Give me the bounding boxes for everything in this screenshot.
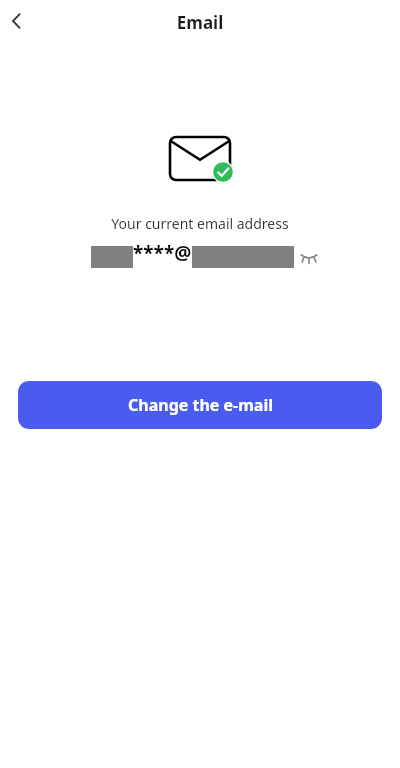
- staticText: Email: [0, 11, 400, 34]
- button[interactable]: Show email address: [296, 244, 322, 270]
- staticText: Your current email address: [0, 214, 400, 233]
- button[interactable]: Back: [0, 4, 34, 38]
- staticText: Change the e-mail: [128, 394, 273, 416]
- button[interactable]: Change the e-mail: [18, 381, 382, 429]
- staticText: ****@: [133, 240, 192, 266]
